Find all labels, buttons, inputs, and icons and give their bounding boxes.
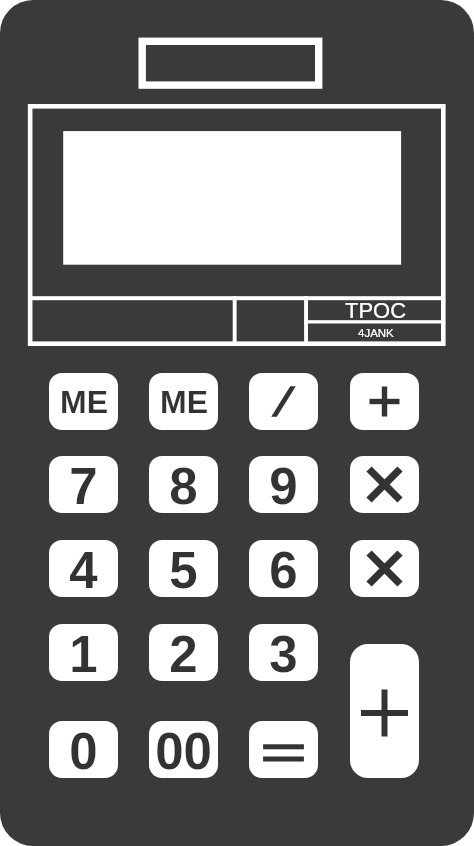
button[interactable]: Multiply: [350, 456, 419, 513]
button[interactable]: Plus: [350, 644, 419, 778]
staticText: 1: [69, 626, 98, 681]
button[interactable]: Memory: [149, 373, 218, 430]
button[interactable]: Three: [249, 624, 318, 681]
staticText: TPOC: [345, 298, 407, 321]
staticText: 8: [169, 458, 198, 513]
staticText: 5: [169, 542, 198, 597]
staticText: 0: [69, 723, 98, 778]
button[interactable]: Seven: [49, 456, 118, 513]
staticText: 4: [69, 542, 98, 597]
staticText: 3: [269, 626, 298, 681]
button[interactable]: Four: [49, 540, 118, 597]
button[interactable]: Divide: [249, 373, 318, 430]
button[interactable]: Memory: [49, 373, 118, 430]
button[interactable]: Nine: [249, 456, 318, 513]
staticText: 7: [69, 458, 98, 513]
staticText: 4JANK: [358, 327, 394, 340]
button[interactable]: Plus: [350, 373, 419, 430]
staticText: 2: [169, 626, 198, 681]
staticText: 6: [269, 542, 298, 597]
staticText: ME: [160, 384, 208, 420]
button[interactable]: Double zero: [149, 721, 218, 778]
staticText: 00: [155, 723, 212, 778]
button[interactable]: Two: [149, 624, 218, 681]
button[interactable]: Multiply: [350, 540, 419, 597]
staticText: ME: [60, 384, 108, 420]
button[interactable]: One: [49, 624, 118, 681]
button[interactable]: Six: [249, 540, 318, 597]
button[interactable]: Eight: [149, 456, 218, 513]
button[interactable]: Five: [149, 540, 218, 597]
button[interactable]: Zero: [49, 721, 118, 778]
staticText: 9: [269, 458, 298, 513]
button[interactable]: Equals: [249, 721, 318, 778]
